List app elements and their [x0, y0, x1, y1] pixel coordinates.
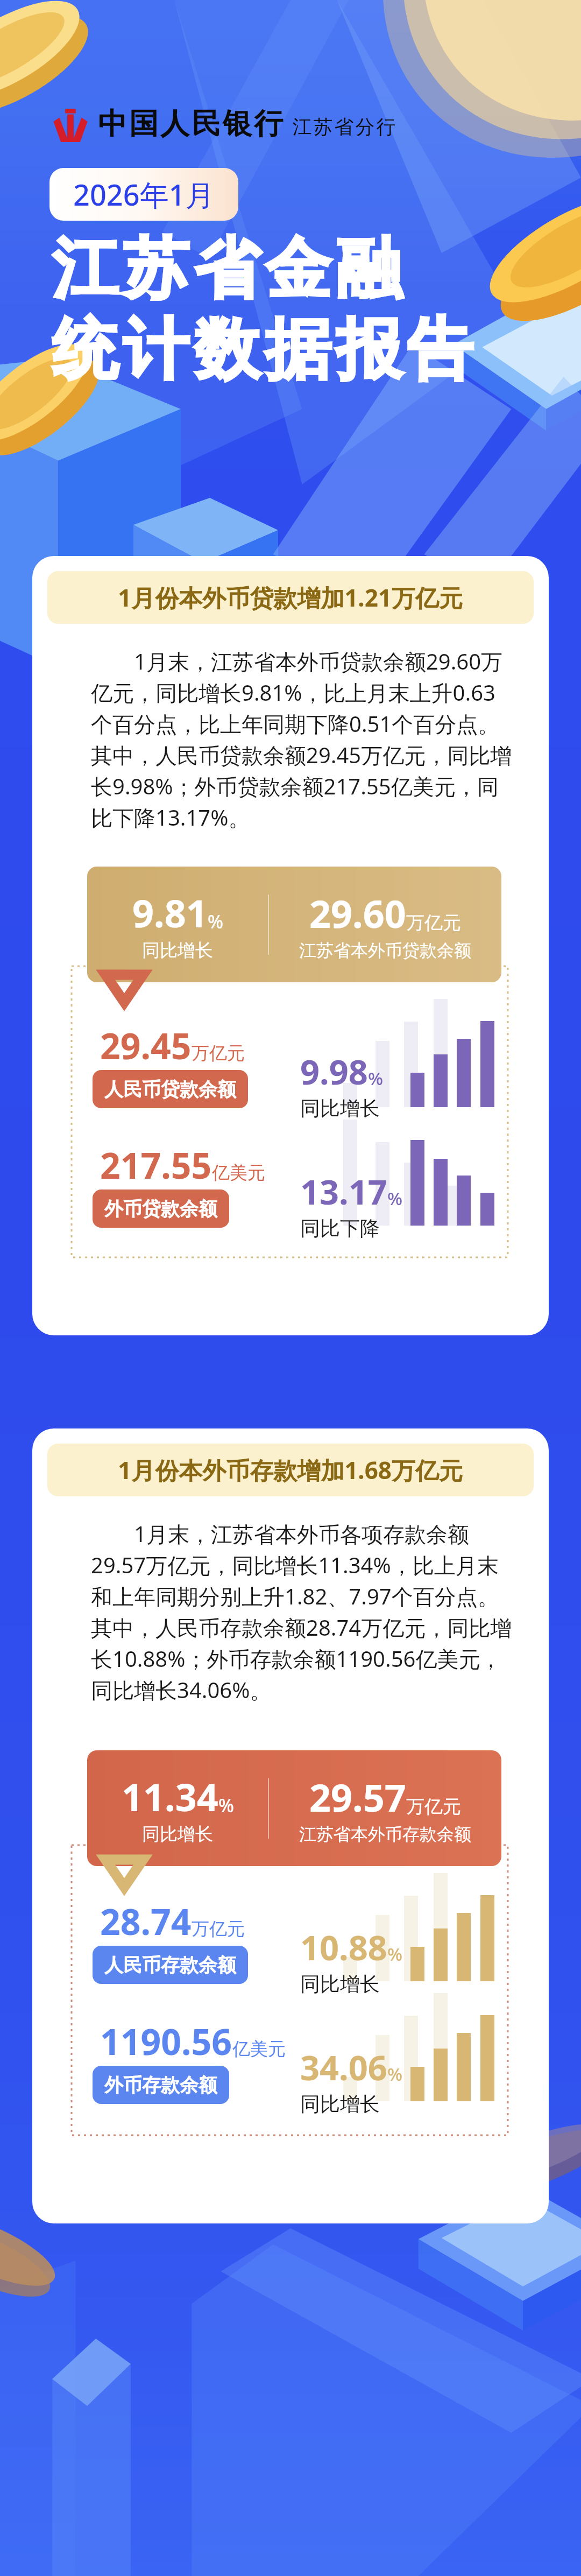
staticText: 人民币贷款余额	[104, 1078, 236, 1101]
staticText: 同比增长	[300, 2092, 380, 2117]
staticText: 2026年1月	[73, 174, 215, 214]
staticText: 同比下降	[300, 1216, 380, 1241]
staticText: %	[208, 909, 223, 934]
staticText: 34.06	[300, 2044, 387, 2091]
staticText: 江苏省本外币贷款余额	[299, 940, 471, 961]
staticText: 万亿元	[406, 1795, 461, 1818]
staticText: 同比增长	[300, 1972, 380, 1997]
staticText: %	[368, 1066, 384, 1090]
staticText: 江苏省分行	[292, 115, 396, 139]
staticText: 217.55	[100, 1141, 212, 1189]
button[interactable]: 人民币贷款余额	[93, 1070, 248, 1108]
staticText: 亿美元	[212, 1162, 265, 1184]
button[interactable]: 2026年1月	[49, 168, 238, 221]
staticText: 29.60	[309, 888, 406, 939]
staticText: 人民币存款余额	[104, 1953, 236, 1977]
staticText: 同比增长	[300, 1096, 380, 1121]
staticText: 29.57	[309, 1771, 406, 1822]
staticText: 1月份本外币存款增加1.68万亿元	[118, 1454, 463, 1486]
staticText: 江苏省金融	[49, 228, 405, 311]
button[interactable]: 11.34	[87, 1750, 501, 1866]
staticText: %	[387, 2062, 403, 2086]
staticText: 11.34	[122, 1771, 218, 1822]
button[interactable]: 1月份本外币存款增加1.68万亿元	[47, 1444, 534, 1496]
staticText: 亿美元	[232, 2038, 286, 2060]
button[interactable]: 外币贷款余额	[93, 1190, 229, 1228]
staticText: 同比增长	[142, 939, 213, 962]
staticText: 13.17	[300, 1169, 387, 1215]
staticText: 29.45	[100, 1021, 192, 1069]
staticText: 万亿元	[192, 1918, 245, 1940]
staticText: 1月末，江苏省本外币各项存款余额 29.57万亿元，同比增长11.34%，比上月…	[91, 1519, 516, 1705]
staticText: 外币存款余额	[104, 2073, 217, 2097]
staticText: %	[218, 1793, 234, 1818]
staticText: %	[387, 1186, 403, 1210]
staticText: 9.98	[300, 1048, 368, 1095]
staticText: 外币贷款余额	[104, 1197, 217, 1221]
staticText: 1月份本外币贷款增加1.21万亿元	[118, 581, 463, 614]
staticText: 1月末，江苏省本外币贷款余额29.60万 亿元，同比增长9.81%，比上月末上升…	[91, 646, 516, 832]
staticText: 统计数据报告	[49, 309, 476, 392]
button[interactable]: 1月份本外币贷款增加1.21万亿元	[47, 571, 534, 624]
button[interactable]: 人民币存款余额	[93, 1946, 248, 1984]
button[interactable]: 外币存款余额	[93, 2066, 229, 2104]
staticText: 万亿元	[192, 1042, 245, 1065]
staticText: 江苏省本外币存款余额	[299, 1824, 471, 1845]
staticText: 9.81	[132, 887, 208, 938]
button[interactable]: 9.81	[87, 867, 501, 982]
staticText: 万亿元	[406, 911, 461, 934]
staticText: 同比增长	[142, 1823, 213, 1846]
staticText: 28.74	[100, 1897, 192, 1945]
staticText: %	[387, 1942, 403, 1966]
staticText: 中国人民银行	[97, 105, 284, 142]
staticText: 10.88	[300, 1924, 387, 1970]
staticText: 1190.56	[100, 2017, 232, 2065]
